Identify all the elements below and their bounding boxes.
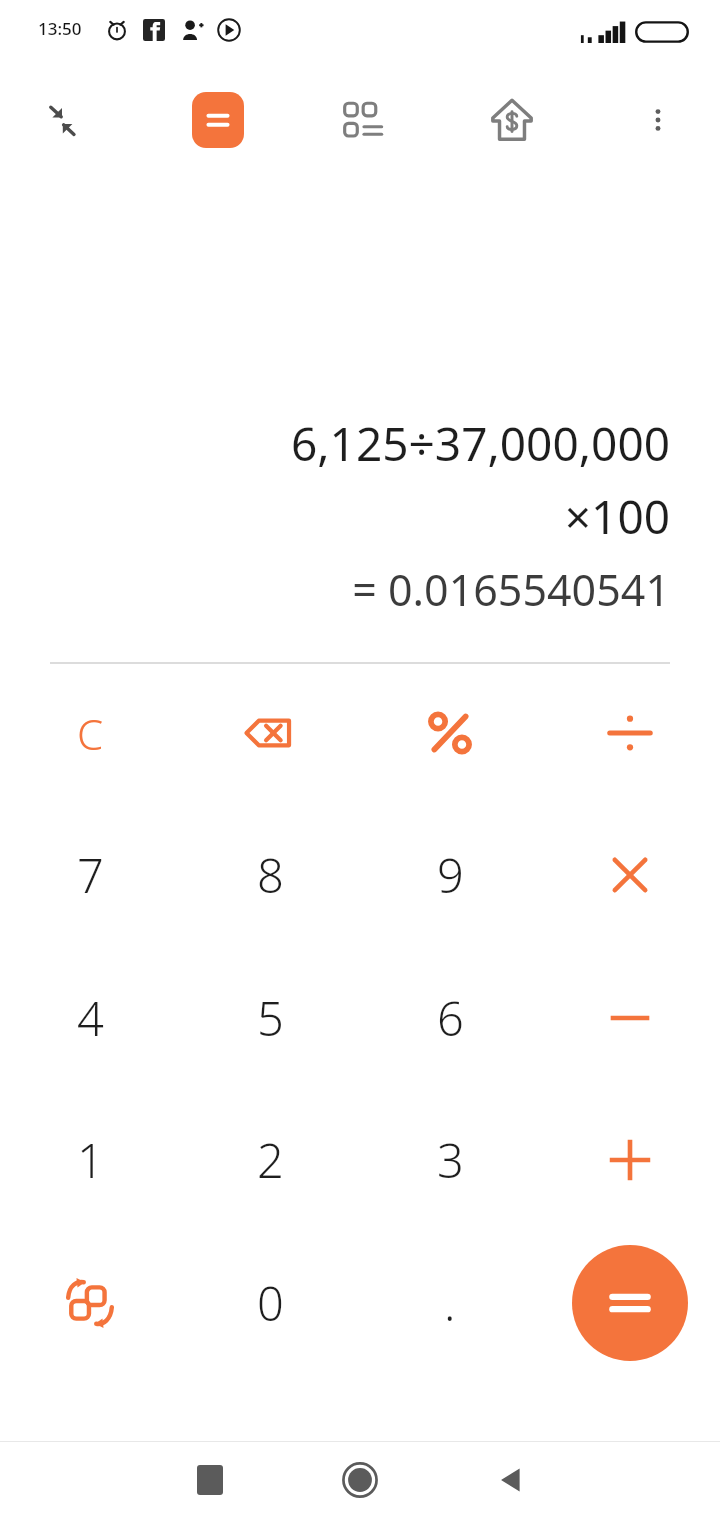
button[interactable]: Swap units <box>0 1232 180 1374</box>
button[interactable]: 1 <box>0 1089 180 1231</box>
button[interactable]: More options <box>622 84 694 156</box>
staticText: 5 <box>257 986 284 1050</box>
staticText: 1 <box>77 1128 104 1192</box>
button[interactable]: C <box>0 662 180 804</box>
staticText: 8 <box>257 843 284 907</box>
button[interactable]: Multiply <box>540 804 720 946</box>
staticText: 6,125÷37,000,000 <box>290 412 670 475</box>
staticText: 13:50 <box>38 17 82 40</box>
button[interactable]: 7 <box>0 804 180 946</box>
staticText: 9 <box>437 843 464 907</box>
button[interactable]: Divide <box>540 662 720 804</box>
staticText: = 0.0165540541 <box>352 560 670 619</box>
button[interactable]: Recent apps <box>150 1440 270 1520</box>
button[interactable]: Mortgage <box>476 84 548 156</box>
staticText: 0 <box>257 1271 284 1335</box>
button[interactable]: . <box>360 1232 540 1374</box>
button[interactable]: 0 <box>180 1232 360 1374</box>
staticText: 7 <box>77 843 104 907</box>
staticText: 3 <box>437 1128 464 1192</box>
staticText: C <box>77 705 104 762</box>
button[interactable]: Calculator <box>182 84 254 156</box>
button[interactable]: Home <box>300 1440 420 1520</box>
button[interactable]: Collapse <box>26 84 98 156</box>
button[interactable]: 9 <box>360 804 540 946</box>
button[interactable]: Backspace <box>180 662 360 804</box>
staticText: . <box>444 1271 456 1335</box>
button[interactable]: Unit converter <box>328 84 400 156</box>
button[interactable]: 8 <box>180 804 360 946</box>
button[interactable]: Minus <box>540 947 720 1089</box>
staticText: 6 <box>437 986 464 1050</box>
button[interactable]: Plus <box>540 1089 720 1231</box>
button[interactable]: 3 <box>360 1089 540 1231</box>
staticText: 2 <box>257 1128 284 1192</box>
button[interactable]: 6 <box>360 947 540 1089</box>
button[interactable]: 5 <box>180 947 360 1089</box>
button[interactable]: Back <box>450 1440 570 1520</box>
button[interactable]: Equals <box>572 1245 688 1361</box>
button[interactable]: 4 <box>0 947 180 1089</box>
staticText: ×100 <box>564 485 670 548</box>
button[interactable]: Percent <box>360 662 540 804</box>
staticText: 4 <box>77 986 104 1050</box>
button[interactable]: 2 <box>180 1089 360 1231</box>
